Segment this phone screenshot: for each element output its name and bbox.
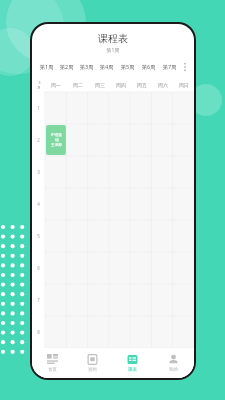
staticText: 础: [55, 138, 59, 143]
button[interactable]: 第7周: [159, 63, 180, 71]
button[interactable]: 资料: [72, 348, 112, 378]
button[interactable]: 第4周: [96, 63, 117, 71]
staticText: 3: [38, 80, 41, 85]
button[interactable]: 第3周: [76, 63, 96, 71]
staticText: 周四: [116, 82, 126, 88]
staticText: 周日: [179, 82, 189, 88]
button[interactable]: More options: [180, 61, 190, 73]
button[interactable]: 第2周: [56, 63, 76, 71]
staticText: 第7周: [162, 63, 177, 71]
button[interactable]: 第5周: [117, 63, 138, 71]
staticText: 1: [37, 105, 40, 111]
staticText: 8: [37, 329, 40, 335]
staticText: 资料: [88, 367, 97, 373]
staticText: 周二: [73, 82, 83, 88]
staticText: 第2周: [59, 63, 74, 71]
button[interactable]: 护理基: [45, 124, 67, 156]
button[interactable]: 第1周: [36, 63, 56, 71]
staticText: 第6周: [141, 63, 156, 71]
staticText: 周五: [137, 82, 147, 88]
staticText: 5: [37, 233, 40, 239]
staticText: 第1周: [32, 47, 194, 54]
button[interactable]: 课表: [112, 348, 153, 378]
staticText: 第5周: [120, 63, 135, 71]
staticText: 第3周: [79, 63, 94, 71]
button[interactable]: 第6周: [138, 63, 159, 71]
staticText: 周六: [158, 82, 168, 88]
staticText: 第4周: [99, 63, 114, 71]
staticText: 我的: [169, 367, 178, 373]
staticText: 6: [37, 265, 40, 271]
staticText: 课程表: [32, 32, 194, 45]
button[interactable]: 我的: [153, 348, 194, 378]
staticText: 3: [37, 169, 40, 175]
staticText: 周一: [51, 82, 61, 88]
staticText: 月: [37, 85, 41, 90]
staticText: 护理基: [51, 133, 62, 138]
staticText: 4: [37, 201, 40, 207]
staticText: 7: [37, 297, 40, 303]
staticText: 周三: [95, 82, 105, 88]
staticText: 第1周: [39, 63, 54, 71]
staticText: 首页: [48, 367, 57, 373]
button[interactable]: 首页: [32, 348, 72, 378]
staticText: 王老师: [51, 143, 62, 148]
staticText: 课表: [128, 367, 137, 373]
